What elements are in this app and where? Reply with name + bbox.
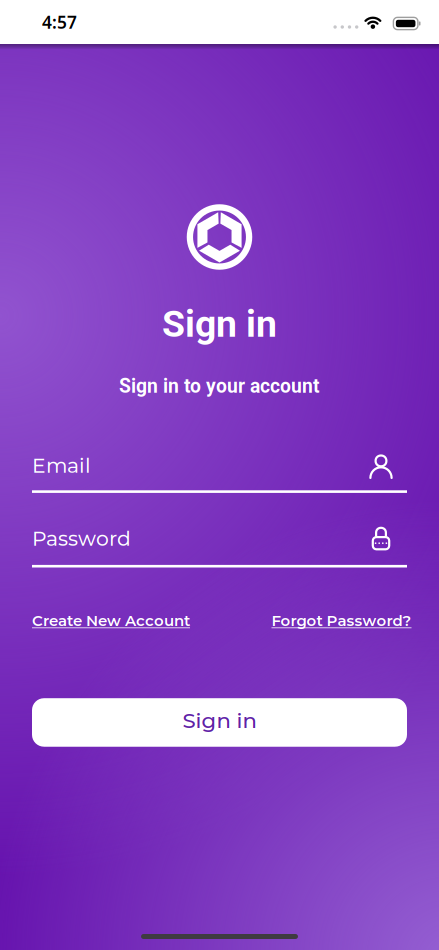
- staticText: Forgot Password?: [271, 611, 411, 630]
- staticText: Email: [32, 453, 91, 478]
- staticText: Sign in: [162, 302, 277, 346]
- button[interactable]: Sign in: [32, 698, 407, 747]
- button[interactable]: Create New Account: [32, 611, 190, 630]
- staticText: 4:57: [42, 10, 77, 33]
- staticText: Password: [32, 526, 131, 551]
- staticText: Create New Account: [32, 611, 190, 630]
- button[interactable]: Forgot Password?: [271, 611, 411, 630]
- button[interactable]: Password: [0, 525, 439, 567]
- staticText: Sign in: [182, 707, 256, 733]
- button[interactable]: Email: [0, 451, 439, 493]
- staticText: Sign in to your account: [119, 375, 320, 397]
